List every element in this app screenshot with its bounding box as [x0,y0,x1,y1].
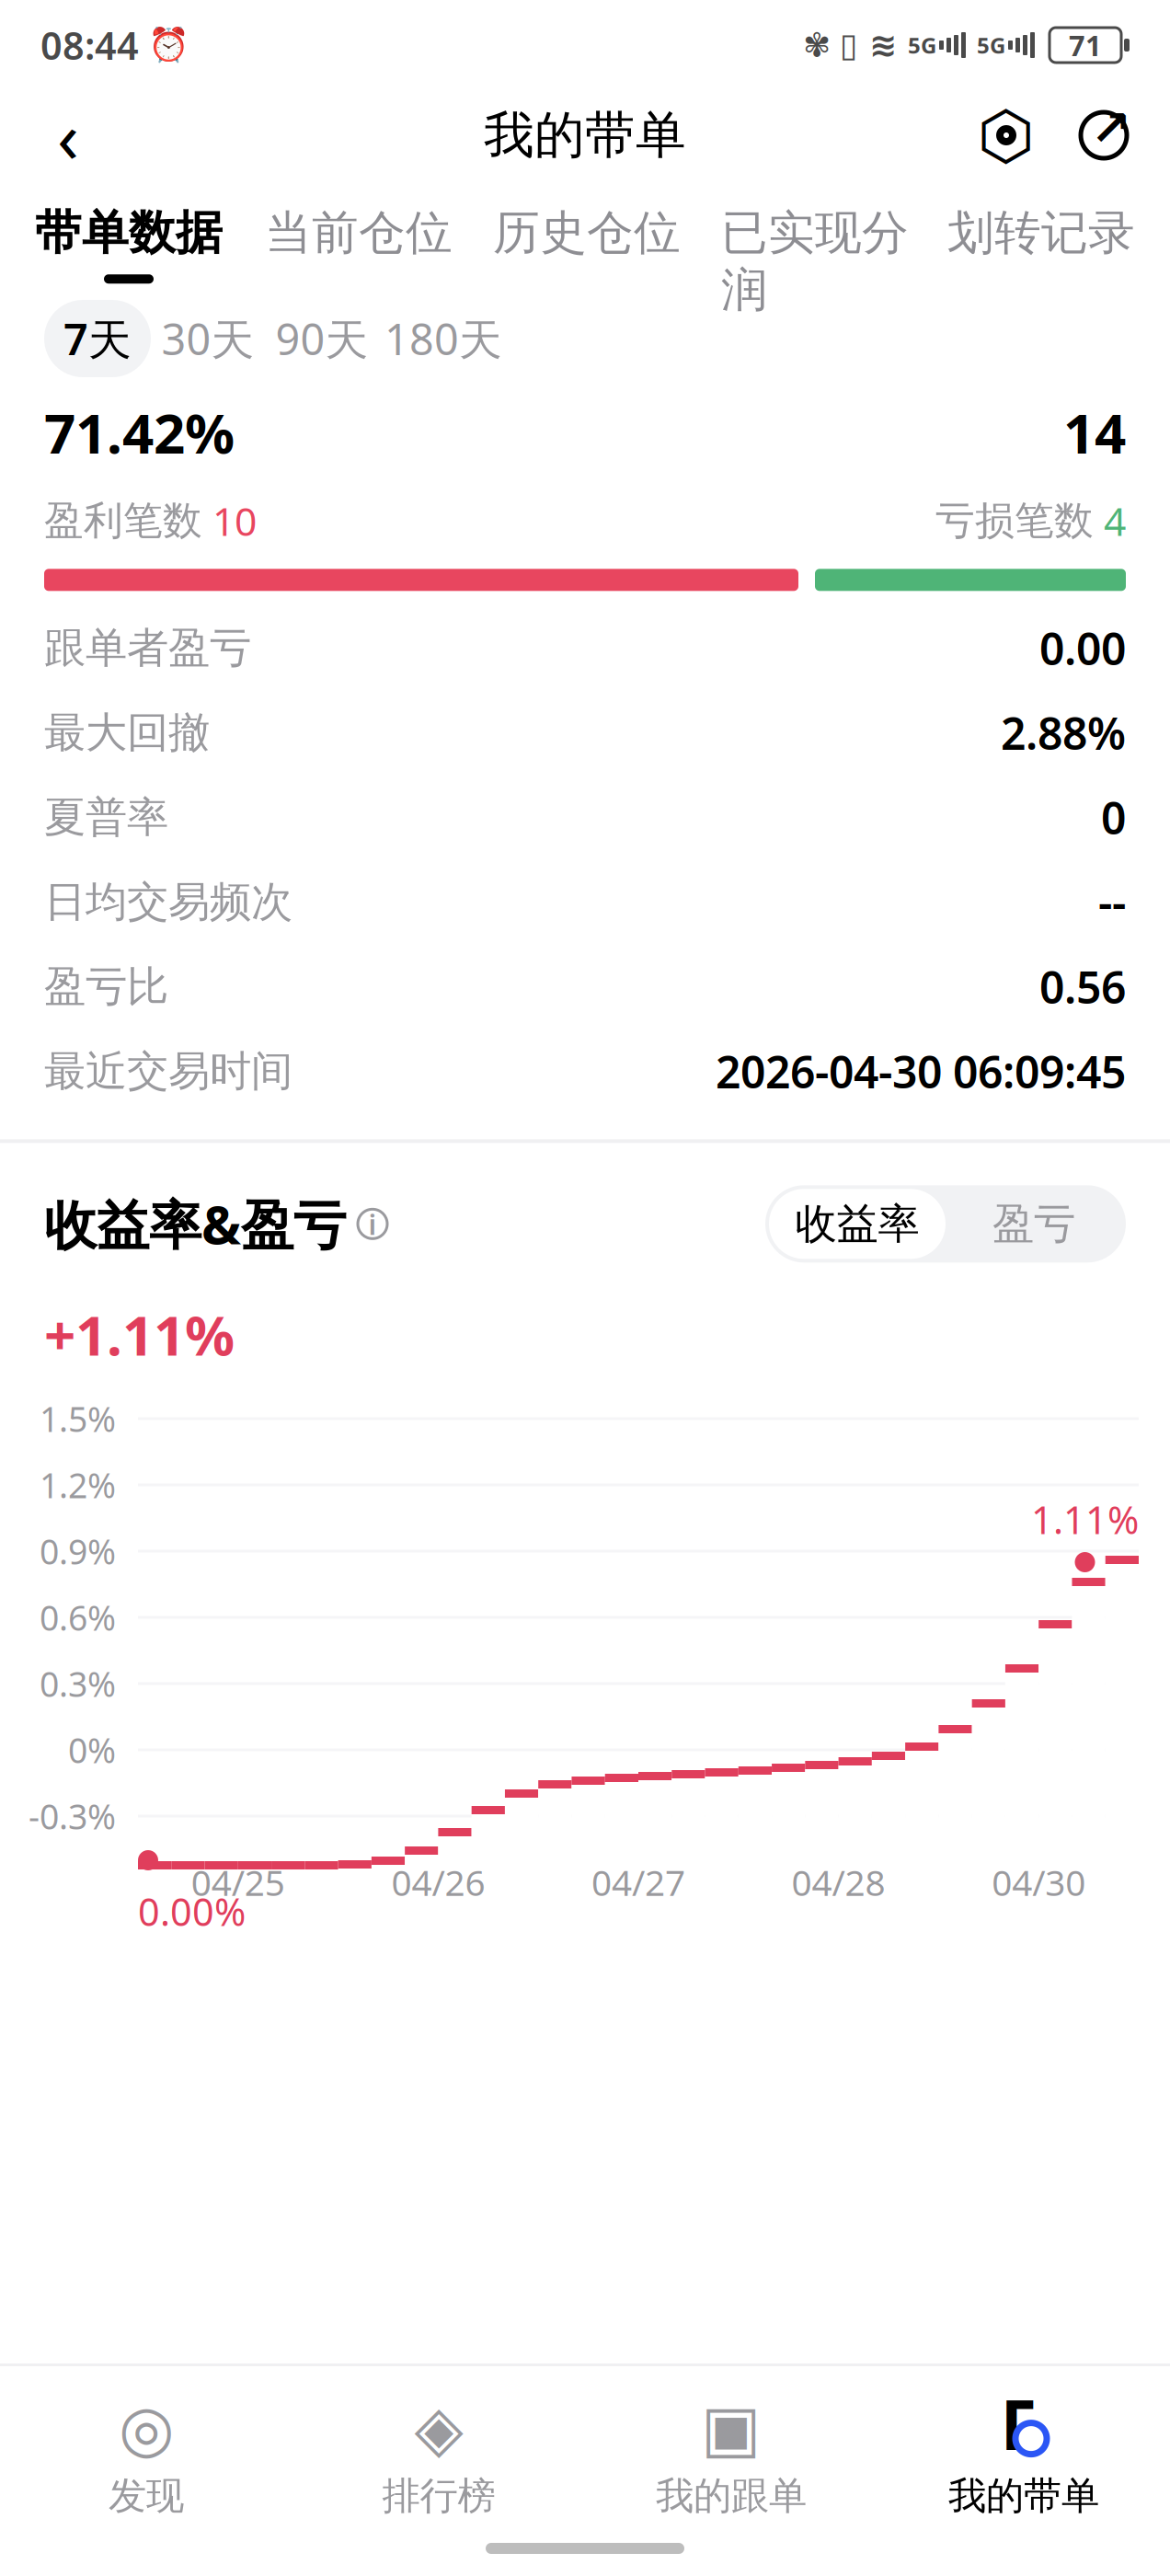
staticText: 已实现分润 [721,204,909,319]
staticText: 08:44 [40,20,139,70]
staticText: 04/27 [591,1858,685,1906]
staticText: 盈亏比 [44,961,168,1012]
button[interactable]: ◈ [292,2390,585,2528]
button[interactable]: Back [24,91,112,179]
staticText: 我的带单 [484,104,686,166]
staticText: ▣ [701,2392,762,2465]
staticText: 盈亏 [992,1198,1075,1250]
staticText: ✾ [803,26,831,64]
button[interactable]: 30天 [151,300,265,377]
staticText: 1.2% [40,1462,116,1508]
staticText: 71.42% [44,396,235,469]
button[interactable]: ◎ [0,2390,292,2528]
staticText: 当前仓位 [265,204,453,261]
button[interactable]: ▣ [585,2390,877,2528]
staticText: 71 [1069,26,1102,64]
staticText: 0.3% [40,1661,116,1706]
staticText: 带单数据 [35,204,223,261]
button[interactable]: Share [1049,93,1146,178]
staticText: 0.6% [40,1595,116,1640]
staticText: 7天 [63,310,132,367]
staticText: ▯ [840,26,858,64]
staticText: 2026-04-30 06:09:45 [716,1042,1126,1101]
staticText: 发现 [109,2473,184,2519]
staticText: Γ [1000,2378,1036,2469]
button[interactable]: 收益率 [769,1189,946,1259]
staticText: 180天 [384,310,502,367]
button[interactable]: 盈亏 [946,1189,1122,1259]
button[interactable]: 带单数据 [13,204,245,284]
button[interactable]: 历史仓位 [473,204,701,261]
staticText: i [368,1205,377,1243]
staticText: 跟单者盈亏 [44,622,251,674]
staticText: 划转记录 [947,204,1135,261]
staticText: 14 [1063,396,1126,469]
staticText: 2.88% [1001,703,1126,762]
staticText: 1.11% [1031,1494,1139,1545]
staticText: +1.11% [44,1297,235,1371]
staticText: -- [1098,873,1126,931]
staticText: 0% [68,1727,116,1773]
staticText: 亏损笔数 [935,497,1094,545]
staticText: 04/28 [792,1858,885,1906]
staticText: 04/26 [391,1858,485,1906]
staticText: 0.00 [1039,619,1126,677]
staticText: 30天 [161,310,254,367]
staticText: 0 [1101,788,1126,847]
staticText: ⬡ [977,98,1035,173]
staticText: 0.00% [138,1886,246,1937]
staticText: 我的跟单 [656,2473,807,2519]
staticText: ≋ [869,26,897,64]
staticText: 日均交易频次 [44,876,292,928]
staticText: 5G [977,30,1005,60]
staticText: ◎ [119,2392,174,2465]
staticText: ‹ [57,88,79,183]
button[interactable]: 90天 [265,300,379,377]
staticText: 04/25 [191,1858,285,1906]
staticText: 收益率 [795,1198,919,1250]
staticText: 历史仓位 [493,204,681,261]
staticText: 0.9% [40,1528,116,1574]
staticText: 盈利笔数 [44,497,202,545]
staticText: 1.5% [40,1396,116,1441]
staticText: 0.56 [1039,957,1126,1016]
staticText: 04/30 [992,1858,1086,1906]
staticText: ◈ [414,2392,463,2465]
staticText: 5G [908,30,936,60]
staticText: 排行榜 [382,2473,495,2519]
button[interactable]: Settings [964,93,1049,178]
staticText: 10 [202,495,257,547]
button[interactable]: 当前仓位 [245,204,473,261]
staticText: 我的带单 [948,2473,1099,2519]
staticText: 收益率&盈亏 [44,1189,346,1259]
button[interactable]: 7天 [44,300,151,377]
staticText: 90天 [275,310,368,367]
staticText: 夏普率 [44,792,168,843]
button[interactable]: 划转记录 [929,204,1135,261]
staticText: -0.3% [29,1793,116,1839]
staticText: ↗ [1090,100,1132,156]
staticText: ⏰ [148,26,189,64]
button[interactable]: 已实现分润 [701,204,929,319]
staticText: 最近交易时间 [44,1046,292,1097]
button[interactable]: Info [346,1197,399,1251]
staticText: 最大回撤 [44,707,210,758]
staticText: 4 [1094,495,1126,547]
button[interactable]: 180天 [379,300,508,377]
button[interactable]: Γ [877,2390,1170,2528]
